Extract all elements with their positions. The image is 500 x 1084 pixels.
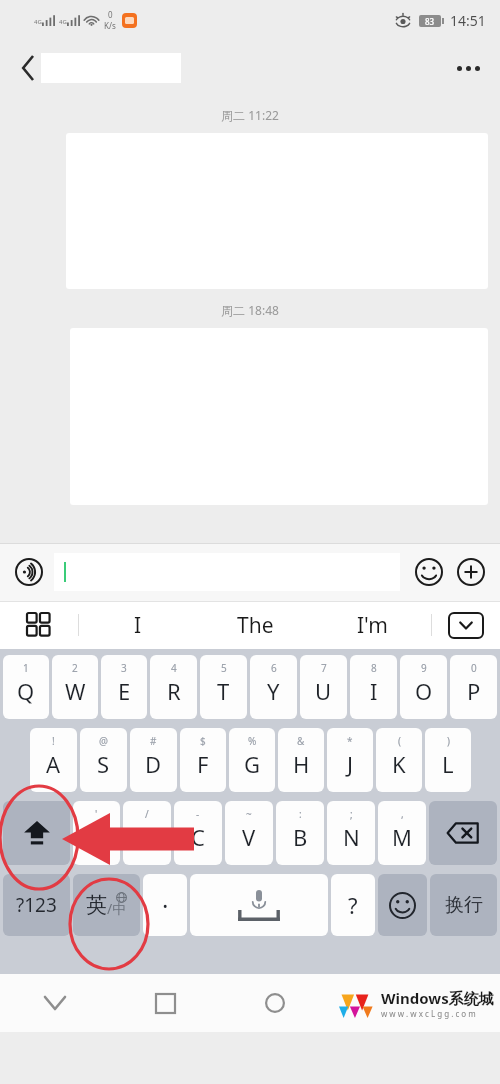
button[interactable]: ; xyxy=(327,801,375,865)
button[interactable]: ?123 xyxy=(3,874,70,936)
button[interactable]: * xyxy=(327,728,373,792)
button[interactable]: $ xyxy=(180,728,226,792)
staticText: 7 xyxy=(321,661,327,675)
button[interactable]: Back xyxy=(8,48,48,88)
button[interactable]: Backspace xyxy=(429,801,497,865)
staticText: / xyxy=(145,807,149,821)
button[interactable]: & xyxy=(278,728,324,792)
staticText: R xyxy=(167,676,181,706)
button[interactable]: 6 xyxy=(250,655,297,719)
button[interactable]: / xyxy=(123,801,171,865)
staticText: ? xyxy=(348,890,358,920)
button[interactable]: # xyxy=(130,728,177,792)
staticText: ( xyxy=(398,734,401,748)
button[interactable]: ' xyxy=(73,801,120,865)
button[interactable]: 换行 xyxy=(430,874,497,936)
button[interactable]: 英 xyxy=(73,874,140,936)
button[interactable]: ? xyxy=(331,874,375,936)
button[interactable]: 1 xyxy=(3,655,49,719)
staticText: 1 xyxy=(23,661,29,675)
staticText: - xyxy=(196,807,200,821)
staticText: J xyxy=(347,749,354,779)
button[interactable]: 5 xyxy=(200,655,247,719)
button[interactable]: Voice input xyxy=(12,555,46,589)
staticText: G xyxy=(244,749,261,779)
button[interactable]: Back xyxy=(0,974,110,1032)
staticText: ~ xyxy=(246,807,252,821)
button[interactable]: : xyxy=(276,801,324,865)
button[interactable]: Emoji xyxy=(412,555,446,589)
button[interactable]: I'm xyxy=(314,601,431,649)
staticText: ; xyxy=(350,807,353,821)
staticText: $ xyxy=(200,734,206,748)
staticText: A xyxy=(46,749,61,779)
staticText: B xyxy=(293,822,308,852)
button[interactable]: ~ xyxy=(225,801,273,865)
staticText: K/s xyxy=(104,20,116,31)
staticText: 4G xyxy=(59,18,67,26)
button[interactable] xyxy=(54,553,400,591)
staticText: * xyxy=(347,734,353,748)
staticText: L xyxy=(442,749,454,779)
button[interactable]: 2 xyxy=(52,655,98,719)
button[interactable]: % xyxy=(229,728,275,792)
staticText: U xyxy=(315,676,332,706)
button[interactable]: I xyxy=(79,601,197,649)
button[interactable]: Space xyxy=(190,874,328,936)
staticText: N xyxy=(343,822,360,852)
button[interactable]: · xyxy=(143,874,187,936)
staticText: 6 xyxy=(271,661,277,675)
button[interactable]: The xyxy=(197,601,314,649)
staticText: Windows系统城 xyxy=(381,988,494,1008)
button[interactable]: - xyxy=(174,801,222,865)
staticText: /中 xyxy=(107,899,127,918)
button[interactable]: More functions xyxy=(454,555,488,589)
button[interactable]: 7 xyxy=(300,655,347,719)
button[interactable]: ! xyxy=(30,728,77,792)
staticText: Q xyxy=(17,676,35,706)
staticText: 5 xyxy=(221,661,227,675)
button[interactable]: Keyboard menu xyxy=(0,601,78,649)
staticText: , xyxy=(401,807,404,821)
button[interactable]: Recent apps xyxy=(110,974,220,1032)
staticText: F xyxy=(197,749,209,779)
button[interactable]: , xyxy=(378,801,426,865)
button[interactable]: Emoji xyxy=(378,874,427,936)
staticText: 4G xyxy=(34,18,42,26)
staticText: V xyxy=(242,822,256,852)
button[interactable]: ( xyxy=(376,728,422,792)
button[interactable]: Shift xyxy=(3,801,70,865)
button[interactable]: More options xyxy=(446,46,490,90)
button[interactable]: Home xyxy=(220,974,330,1032)
staticText: P xyxy=(467,676,481,706)
staticText: ) xyxy=(447,734,450,748)
staticText: 周二 18:48 xyxy=(0,302,500,318)
staticText: 9 xyxy=(421,661,427,675)
staticText: : xyxy=(299,807,302,821)
staticText: @ xyxy=(99,734,108,748)
staticText: I xyxy=(134,611,142,640)
staticText: D xyxy=(145,749,162,779)
staticText: & xyxy=(297,734,305,748)
button[interactable]: ) xyxy=(425,728,471,792)
staticText: ?123 xyxy=(16,892,57,918)
staticText: Y xyxy=(267,676,280,706)
button[interactable]: 9 xyxy=(400,655,447,719)
button[interactable]: 4 xyxy=(150,655,197,719)
staticText: ' xyxy=(95,807,98,821)
button[interactable]: 8 xyxy=(350,655,397,719)
staticText: 2 xyxy=(72,661,78,675)
button[interactable]: 0 xyxy=(450,655,497,719)
staticText: M xyxy=(392,822,412,852)
staticText: K xyxy=(392,749,406,779)
staticText: # xyxy=(150,734,157,748)
button[interactable]: Hide keyboard xyxy=(432,601,500,649)
button[interactable]: @ xyxy=(80,728,127,792)
staticText: 0 xyxy=(108,9,113,20)
staticText: Z xyxy=(90,822,103,852)
button[interactable]: 3 xyxy=(101,655,147,719)
staticText: The xyxy=(237,611,274,640)
